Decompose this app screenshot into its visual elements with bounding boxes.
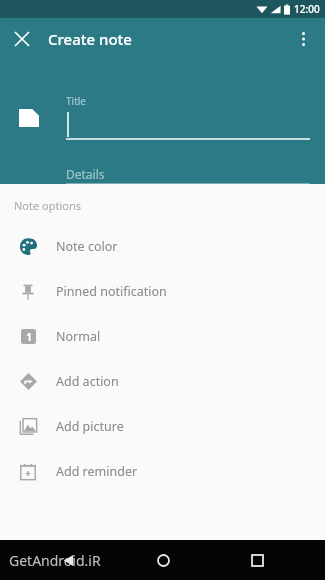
button[interactable]: Add picture: [0, 404, 325, 449]
button[interactable]: 1: [0, 314, 325, 359]
button[interactable]: More options: [281, 18, 325, 60]
button[interactable]: Note color: [0, 224, 325, 269]
staticText: 12:00: [294, 2, 320, 16]
staticText: Note color: [56, 238, 118, 255]
button[interactable]: Back: [41, 540, 95, 580]
button[interactable]: Recent apps: [230, 540, 284, 580]
button[interactable]: Close: [0, 18, 44, 60]
button[interactable]: Add action: [0, 359, 325, 404]
staticText: Pinned notification: [56, 283, 167, 300]
staticText: Details: [66, 166, 105, 182]
staticText: GetAndroid.iR: [9, 551, 101, 570]
staticText: Add reminder: [56, 463, 138, 480]
staticText: Add action: [56, 373, 119, 390]
staticText: Add picture: [56, 418, 124, 435]
staticText: Normal: [56, 328, 101, 345]
staticText: Note options: [14, 198, 82, 213]
button[interactable]: Pinned notification: [0, 269, 325, 314]
staticText: Title: [66, 94, 86, 108]
button[interactable]: Add reminder: [0, 449, 325, 494]
staticText: Create note: [48, 29, 132, 49]
button[interactable]: Home: [136, 540, 190, 580]
staticText: 1: [26, 330, 32, 344]
